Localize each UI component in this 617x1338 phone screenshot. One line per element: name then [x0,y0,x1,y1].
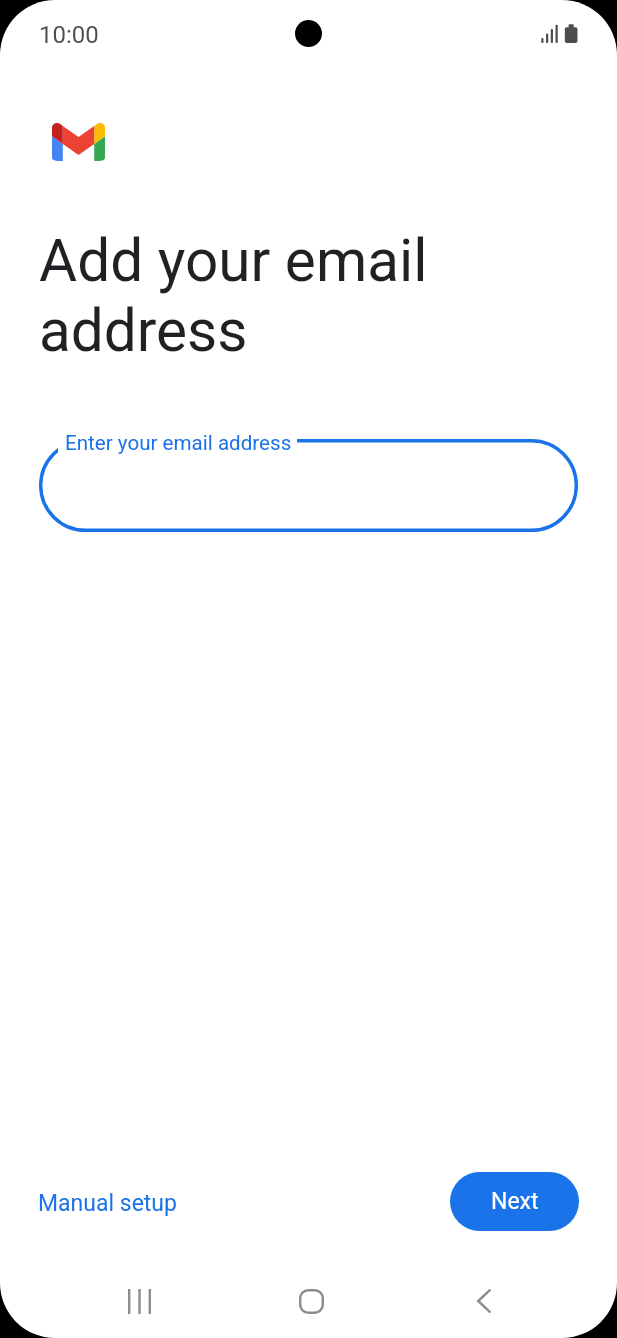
staticText: Manual setup [38,1190,177,1217]
button[interactable]: Manual setup [26,1181,189,1226]
button[interactable]: Back [449,1266,519,1336]
button[interactable]: Next [450,1172,579,1231]
staticText: 10:00 [39,21,99,49]
button[interactable]: Home [276,1266,346,1336]
button[interactable]: Enter your email address [39,439,578,532]
staticText: Add your email address [39,227,428,365]
staticText: Enter your email address [65,431,292,455]
other: Gmail [52,123,105,161]
staticText: Next [491,1188,539,1215]
button[interactable]: Recent apps [104,1266,174,1336]
